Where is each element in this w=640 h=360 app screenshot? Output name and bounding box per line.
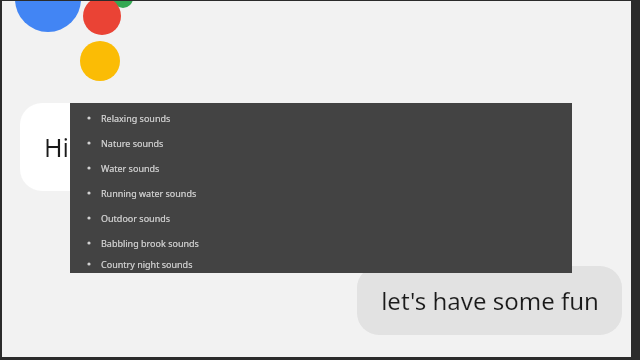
staticText: Babbling brook sounds bbox=[101, 237, 199, 249]
button[interactable]: Running water sounds bbox=[85, 180, 385, 205]
other: Google Assistant bbox=[2, 1, 152, 91]
staticText: Outdoor sounds bbox=[101, 212, 171, 224]
staticText: Water sounds bbox=[101, 162, 160, 174]
staticText: Country night sounds bbox=[101, 258, 193, 270]
button[interactable]: let's have some fun bbox=[357, 266, 622, 335]
staticText: Hi, bbox=[44, 130, 76, 164]
button[interactable]: Country night sounds bbox=[85, 255, 385, 273]
button[interactable]: Outdoor sounds bbox=[85, 205, 385, 230]
staticText: Running water sounds bbox=[101, 187, 197, 199]
button[interactable]: Babbling brook sounds bbox=[85, 230, 385, 255]
staticText: Nature sounds bbox=[101, 137, 164, 149]
staticText: Relaxing sounds bbox=[101, 112, 171, 124]
button[interactable]: Hi, bbox=[20, 103, 170, 191]
button[interactable]: Water sounds bbox=[85, 155, 385, 180]
button[interactable]: Relaxing sounds bbox=[85, 105, 385, 130]
staticText: let's have some fun bbox=[381, 284, 599, 317]
button[interactable]: Nature sounds bbox=[85, 130, 385, 155]
